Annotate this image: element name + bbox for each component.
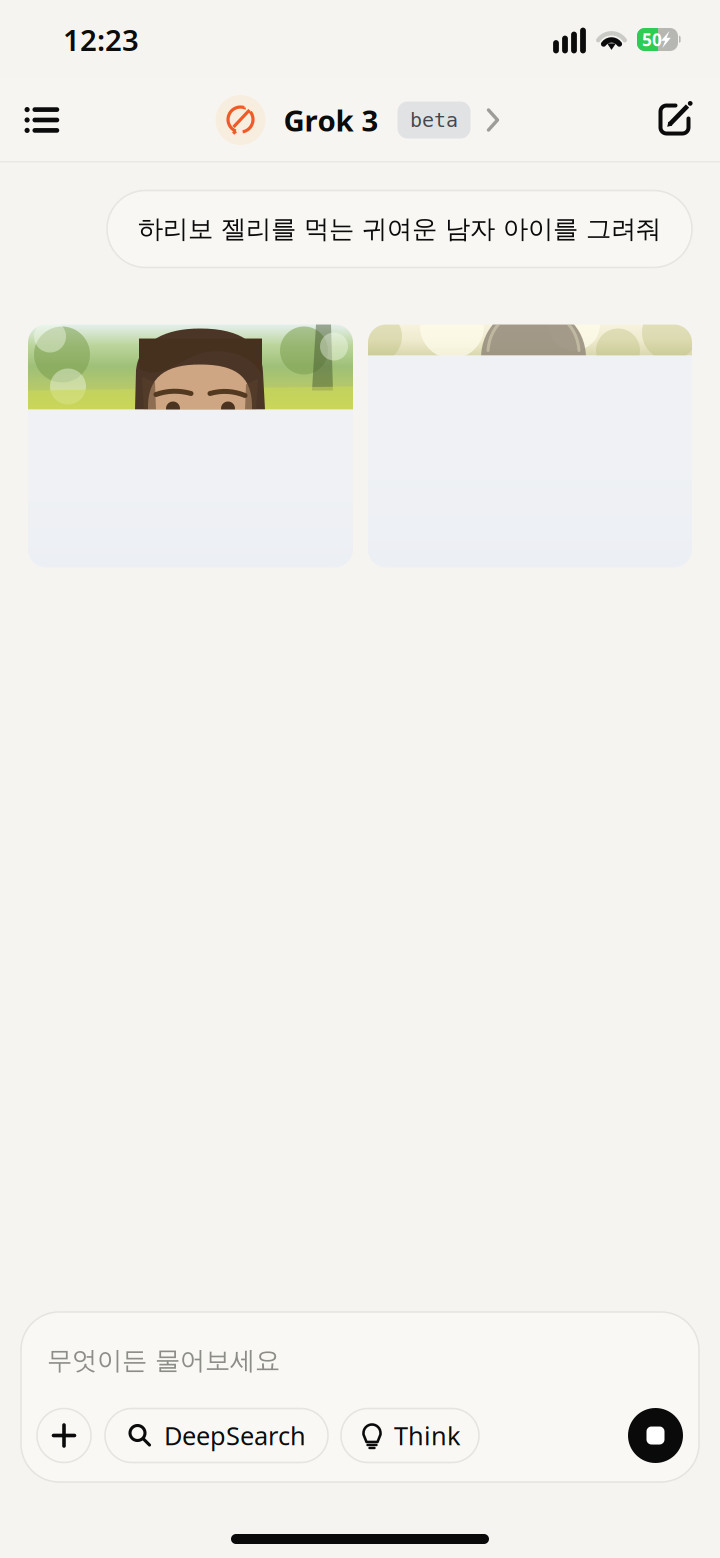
staticText: 50 — [642, 28, 662, 51]
button[interactable]: Add attachment — [37, 1408, 91, 1462]
staticText: Grok 3 — [283, 100, 378, 139]
staticText: beta — [410, 108, 458, 132]
staticText: 하리보 젤리를 먹는 귀여운 남자 아이를 그려줘 — [138, 213, 661, 244]
button[interactable]: Think — [341, 1408, 479, 1462]
button[interactable]: Stop generating — [628, 1408, 683, 1463]
staticText: 무엇이든 물어보세요 — [47, 1345, 280, 1376]
button[interactable]: Conversations — [4, 79, 80, 161]
staticText: DeepSearch — [164, 1419, 306, 1452]
staticText: 12:23 — [63, 20, 139, 59]
button[interactable]: Generated image 2 — [368, 324, 692, 567]
button[interactable]: Generated image 1 — [28, 324, 353, 567]
button[interactable]: New chat — [637, 79, 713, 161]
button[interactable]: DeepSearch — [105, 1408, 328, 1462]
button[interactable]: Grok 3 — [215, 79, 501, 161]
staticText: Think — [394, 1419, 461, 1452]
